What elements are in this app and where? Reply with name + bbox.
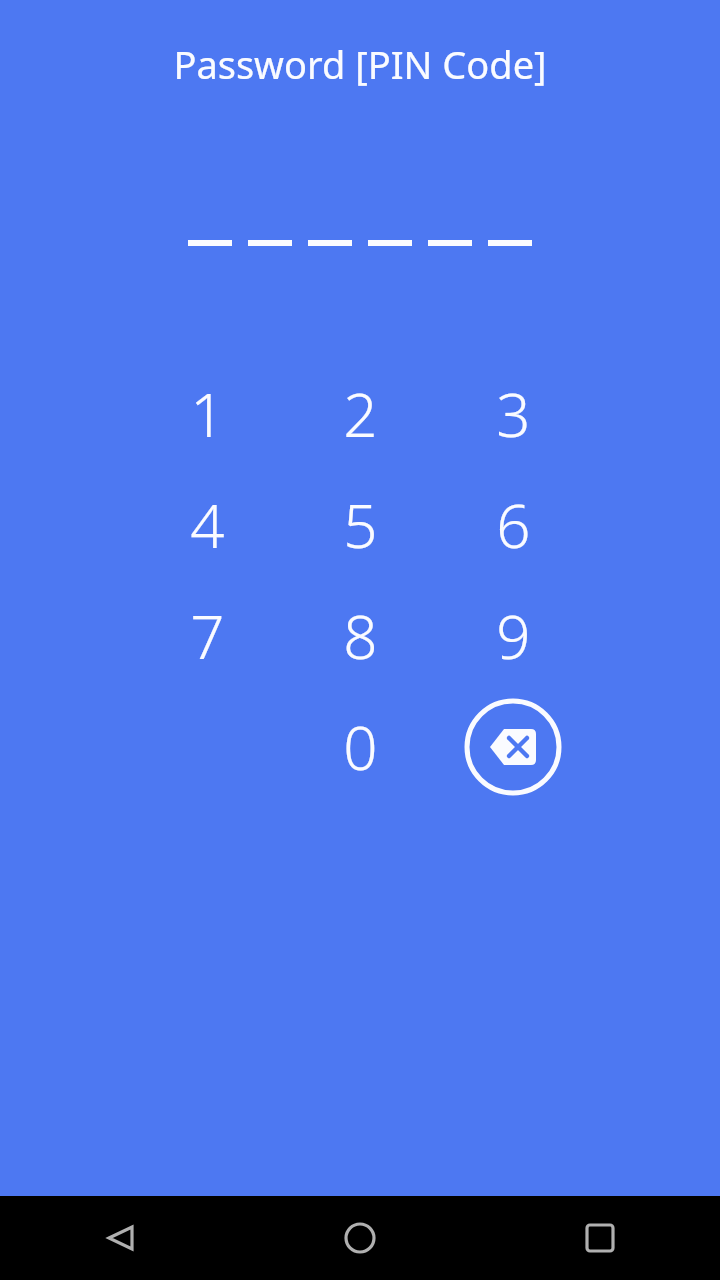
button[interactable]: 7: [127, 580, 287, 691]
staticText: 5: [343, 484, 378, 566]
staticText: 7: [190, 595, 225, 677]
staticText: 9: [496, 595, 531, 677]
button[interactable]: 2: [280, 358, 440, 469]
staticText: 4: [190, 484, 225, 566]
staticText: 1: [190, 373, 225, 455]
button[interactable]: Recent apps: [480, 1196, 720, 1280]
button[interactable]: Delete: [433, 691, 593, 802]
button[interactable]: 5: [280, 469, 440, 580]
staticText: 3: [496, 373, 531, 455]
button[interactable]: Back: [0, 1196, 240, 1280]
staticText: Password [PIN Code]: [173, 38, 547, 90]
button[interactable]: Home: [240, 1196, 480, 1280]
button[interactable]: 6: [433, 469, 593, 580]
button[interactable]: 3: [433, 358, 593, 469]
staticText: 2: [343, 373, 378, 455]
button[interactable]: 9: [433, 580, 593, 691]
staticText: 8: [343, 595, 378, 677]
button[interactable]: 0: [280, 691, 440, 802]
staticText: 6: [496, 484, 531, 566]
staticText: 0: [343, 706, 378, 788]
button[interactable]: 4: [127, 469, 287, 580]
button[interactable]: 1: [127, 358, 287, 469]
button[interactable]: 8: [280, 580, 440, 691]
